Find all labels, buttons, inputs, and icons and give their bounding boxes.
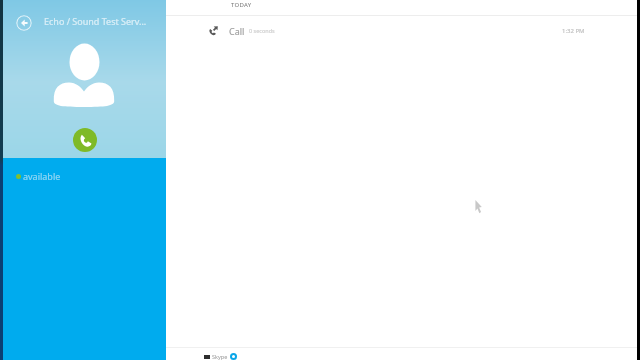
button[interactable]: available bbox=[3, 167, 166, 185]
button[interactable]: Call bbox=[166, 22, 637, 39]
staticText: Skype bbox=[212, 353, 228, 360]
staticText: Echo / Sound Test Serv... bbox=[44, 15, 147, 27]
button[interactable]: Call bbox=[73, 128, 97, 152]
button[interactable]: Back bbox=[16, 15, 32, 31]
staticText: Call bbox=[229, 25, 245, 37]
staticText: TODAY bbox=[231, 1, 252, 9]
staticText: available bbox=[23, 170, 61, 182]
staticText: 0 seconds bbox=[249, 27, 275, 34]
staticText: 1:32 PM bbox=[562, 27, 585, 35]
